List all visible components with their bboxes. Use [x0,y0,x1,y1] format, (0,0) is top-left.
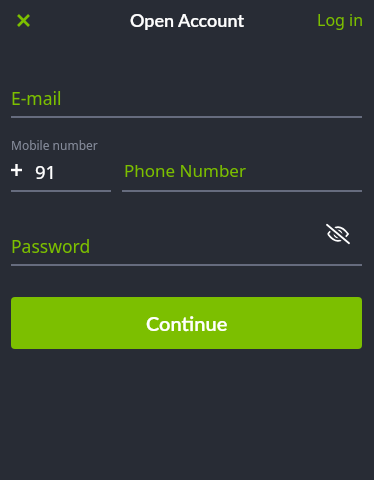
staticText: Password [11,234,91,258]
staticText: Continue [146,311,228,335]
staticText: Mobile number [11,137,98,153]
staticText: Log in [317,9,364,31]
button[interactable]: Show password [322,219,354,249]
button[interactable]: Close [6,3,40,37]
staticText: E-mail [11,86,62,110]
button[interactable]: Continue [11,297,362,349]
button[interactable]: Log in [307,3,374,37]
staticText: 91 [35,159,57,184]
staticText: Phone Number [124,159,246,182]
staticText: Open Account [130,9,245,31]
